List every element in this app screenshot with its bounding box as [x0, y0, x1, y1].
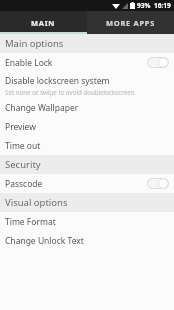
staticText: Visual options [5, 196, 68, 209]
staticText: Main options [5, 37, 64, 50]
staticText: 93% [137, 1, 151, 10]
button[interactable]: MAIN [0, 11, 87, 34]
staticText: Disable lockscreen system [5, 75, 110, 87]
staticText: Time Format [5, 216, 56, 228]
staticText: Preview [5, 121, 36, 133]
staticText: Change Wallpaper [5, 102, 79, 114]
button[interactable]: Change Wallpaper [0, 98, 174, 117]
staticText: Passcode [5, 178, 43, 190]
button[interactable]: MORE APPS [87, 11, 174, 34]
staticText: 16:19 [154, 1, 171, 10]
staticText: Set none or swipe to avoid doublelockscr… [5, 88, 135, 96]
button[interactable]: Time Format [0, 212, 174, 231]
button[interactable]: Toggle setting [147, 178, 169, 189]
button[interactable]: Toggle setting [147, 57, 169, 68]
button[interactable]: Preview [0, 117, 174, 136]
button[interactable]: Passcode [0, 174, 174, 193]
staticText: Security [5, 158, 41, 171]
staticText: MAIN [31, 18, 56, 28]
staticText: Time out [5, 140, 41, 152]
staticText: Enable Lock [5, 57, 53, 69]
button[interactable]: Enable Lock [0, 53, 174, 72]
staticText: Change Unlock Text [5, 235, 84, 247]
button[interactable]: Disable lockscreen system [0, 72, 174, 98]
staticText: MORE APPS [106, 18, 156, 28]
button[interactable]: Time out [0, 136, 174, 155]
button[interactable]: Change Unlock Text [0, 231, 174, 250]
